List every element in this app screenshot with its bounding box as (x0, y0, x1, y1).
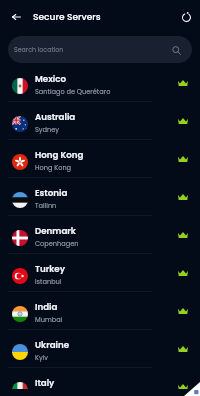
staticText: Hong Kong (35, 149, 84, 161)
button[interactable]: Ukraine (0, 333, 200, 371)
button[interactable]: Search location (8, 36, 192, 63)
staticText: Mexico (35, 73, 67, 85)
staticText: Search location (14, 45, 64, 54)
staticText: Hong Kong (35, 163, 72, 172)
staticText: Kyiv (35, 353, 48, 362)
button[interactable]: Australia (0, 105, 200, 143)
button[interactable]: Refresh (176, 7, 196, 27)
staticText: Ukraine (35, 339, 70, 351)
staticText: Santiago de Querétaro (35, 87, 111, 96)
staticText: Estonia (35, 187, 68, 199)
button[interactable]: Estonia (0, 181, 200, 219)
staticText: Italy (35, 377, 55, 389)
staticText: Denmark (35, 225, 76, 237)
button[interactable]: Turkey (0, 257, 200, 295)
staticText: Secure Servers (33, 10, 101, 23)
staticText: Copenhagen (35, 239, 79, 248)
staticText: India (35, 301, 58, 313)
button[interactable]: Italy (0, 371, 200, 389)
staticText: Mumbai (35, 315, 63, 324)
button[interactable]: Search (168, 42, 184, 58)
button[interactable]: India (0, 295, 200, 333)
staticText: Sydney (35, 125, 60, 134)
staticText: Istanbul (35, 277, 62, 286)
button[interactable]: Back (5, 5, 28, 28)
button[interactable]: Mexico (0, 67, 200, 105)
staticText: Turkey (35, 263, 65, 275)
staticText: Tallinn (35, 201, 57, 210)
button[interactable]: Hong Kong (0, 143, 200, 181)
button[interactable]: Denmark (0, 219, 200, 257)
staticText: Australia (35, 111, 76, 123)
